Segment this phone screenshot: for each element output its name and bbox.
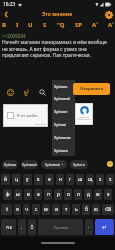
button[interactable]: Enter (95, 219, 114, 235)
button[interactable]: Back (0, 9, 12, 20)
button[interactable]: B (2, 19, 6, 30)
button[interactable]: Хуйовою (52, 131, 75, 144)
button[interactable]: ш (76, 174, 84, 185)
button[interactable]: Search (36, 86, 48, 98)
button[interactable]: Хуйовий (52, 92, 75, 105)
button[interactable]: Отправить (73, 83, 110, 95)
button[interactable]: Shift (1, 204, 12, 215)
staticText: . (88, 224, 90, 230)
button[interactable]: ь (72, 204, 80, 215)
staticText: Хуйовий (45, 162, 60, 167)
button[interactable]: Русский (38, 219, 83, 235)
button[interactable]: г (66, 174, 74, 185)
button[interactable]: Voice input (28, 219, 36, 235)
button[interactable]: Attach file (20, 86, 32, 98)
button[interactable]: Emoji (4, 86, 16, 98)
button[interactable]: д (84, 189, 92, 200)
button[interactable]: Хуйове (52, 105, 75, 118)
button[interactable]: й (1, 174, 10, 185)
button[interactable]: з (96, 174, 104, 185)
button[interactable]: . (85, 219, 93, 235)
button[interactable]: Хуйова (52, 80, 75, 92)
button[interactable]: э (104, 189, 112, 200)
button[interactable]: “Q (57, 19, 65, 30)
staticText: у (26, 176, 29, 183)
button[interactable]: х (106, 174, 114, 185)
staticText: й (4, 176, 7, 183)
button[interactable]: ы (14, 189, 22, 200)
button[interactable]: о (64, 189, 72, 200)
staticText: reCAPTCHA (79, 116, 90, 119)
staticText: ы (16, 191, 20, 198)
button[interactable]: ж (94, 189, 102, 200)
staticText: к (37, 176, 40, 183)
button[interactable]: н (56, 174, 64, 185)
button[interactable]: щ (86, 174, 94, 185)
button[interactable]: ф (3, 189, 12, 200)
staticText: т (65, 206, 68, 213)
button[interactable]: в (24, 189, 32, 200)
button[interactable]: к (34, 174, 43, 185)
button[interactable]: Backspace (102, 204, 114, 215)
staticText: и (55, 206, 58, 213)
staticText: ф (6, 191, 10, 198)
staticText: г (69, 176, 72, 183)
button[interactable]: у (23, 174, 32, 185)
button[interactable]: reCAPTCHA (75, 103, 93, 125)
button[interactable]: S (43, 19, 47, 30)
button[interactable]: , (18, 219, 26, 235)
button[interactable]: Хуйовий (21, 160, 38, 169)
staticText: о (67, 191, 70, 198)
button[interactable]: ц (12, 174, 21, 185)
button[interactable]: и (52, 204, 60, 215)
button[interactable]: SP (75, 19, 83, 30)
button[interactable]: я (14, 204, 21, 215)
staticText: а (37, 191, 40, 198)
button[interactable]: р (54, 189, 62, 200)
staticText: в (27, 191, 30, 198)
staticText: Конфиденциальность (77, 119, 92, 121)
staticText: A˄ (92, 21, 98, 29)
button[interactable]: Хуйовы (52, 144, 75, 157)
button[interactable]: ч (23, 204, 30, 215)
staticText: ⌫ (105, 207, 112, 212)
staticText: Хуйовою (54, 135, 71, 140)
button[interactable]: е (45, 174, 54, 185)
button[interactable]: т (62, 204, 70, 215)
button[interactable]: а (34, 189, 42, 200)
staticText: щ (88, 176, 93, 183)
staticText: ц (15, 176, 18, 183)
staticText: ?1# (6, 225, 12, 230)
button[interactable]: м (42, 204, 50, 215)
staticText: I (16, 21, 19, 29)
button[interactable]: U (28, 19, 33, 30)
staticText: “Q (57, 21, 65, 29)
button[interactable]: л (74, 189, 82, 200)
button[interactable]: A˅ (108, 19, 114, 30)
button[interactable]: ?1# (1, 219, 16, 235)
button[interactable]: Хуйовий (41, 160, 67, 169)
button[interactable]: Хуйова (2, 160, 18, 169)
staticText: е (48, 176, 51, 183)
button[interactable]: Хуйові (52, 118, 75, 131)
button[interactable]: Settings (103, 9, 115, 20)
button[interactable]: I (16, 19, 19, 30)
staticText: з (99, 176, 102, 183)
staticText: с (35, 206, 38, 213)
staticText: х (109, 176, 112, 183)
button[interactable]: A˄ (92, 19, 98, 30)
button[interactable]: ю (92, 204, 100, 215)
button[interactable]: б (82, 204, 90, 215)
staticText: Хуйовий (22, 162, 37, 167)
button[interactable]: п (44, 189, 52, 200)
staticText: reCAPTCHA (35, 123, 46, 126)
staticText: Хуйова (4, 162, 17, 167)
staticText: Это мнение (42, 11, 73, 18)
staticText: п (47, 191, 50, 198)
staticText: Хуйова (54, 84, 68, 89)
staticText: >>2009204 (2, 33, 26, 39)
button[interactable]: Я не робот (3, 104, 48, 127)
button[interactable]: с (32, 204, 40, 215)
staticText: Начнёт магазин панорамных и нём вообще н… (2, 39, 113, 58)
button[interactable]: Хуйого (70, 160, 88, 169)
